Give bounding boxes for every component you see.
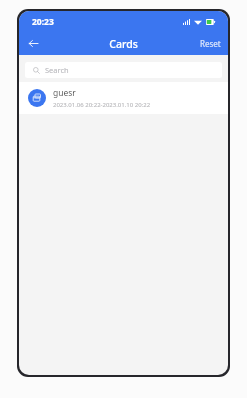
staticText: Reset: [200, 38, 221, 49]
button[interactable]: Reset: [193, 32, 228, 55]
staticText: Search: [45, 65, 69, 75]
button[interactable]: Search: [25, 62, 222, 78]
button[interactable]: Back: [19, 32, 47, 55]
button[interactable]: guesr: [19, 82, 228, 114]
staticText: guesr: [53, 87, 76, 99]
staticText: 20:23: [32, 16, 54, 28]
staticText: Cards: [109, 37, 138, 51]
staticText: 2023.01.06 20:22-2023.01.10 20:22: [53, 101, 151, 109]
